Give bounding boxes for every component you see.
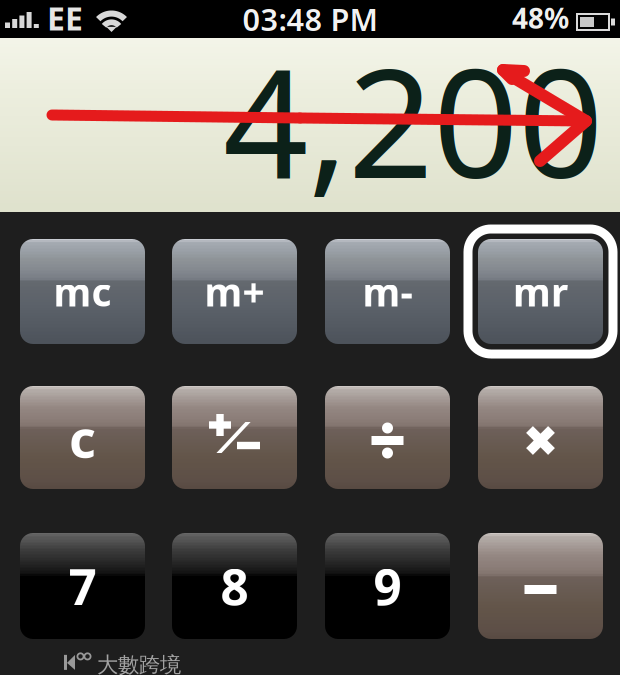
staticText: 大數跨境 xyxy=(97,652,181,675)
staticText: 7 xyxy=(68,553,96,619)
button[interactable]: mr xyxy=(478,239,603,344)
button[interactable]: 7 xyxy=(20,533,145,639)
button[interactable]: 8 xyxy=(172,533,297,639)
button[interactable]: Multiply xyxy=(478,386,603,489)
button[interactable]: m+ xyxy=(172,239,297,344)
staticText: mr xyxy=(513,266,568,317)
staticText: 8 xyxy=(220,553,248,619)
button[interactable]: m- xyxy=(325,239,450,344)
staticText: m+ xyxy=(204,266,264,317)
button[interactable]: 9 xyxy=(325,533,450,639)
staticText: 03:48 PM xyxy=(242,0,377,39)
staticText: m- xyxy=(362,266,412,317)
staticText: 48% xyxy=(512,0,569,37)
button[interactable]: mc xyxy=(20,239,145,344)
button[interactable]: Minus xyxy=(478,533,603,639)
button[interactable]: Divide xyxy=(325,386,450,489)
staticText: 4,200 xyxy=(223,21,603,219)
button[interactable]: Plus minus xyxy=(172,386,297,489)
staticText: c xyxy=(69,403,96,472)
staticText: EE xyxy=(47,0,83,39)
staticText: mc xyxy=(53,266,111,317)
button[interactable]: Clear xyxy=(20,386,145,489)
staticText: 9 xyxy=(373,553,401,619)
